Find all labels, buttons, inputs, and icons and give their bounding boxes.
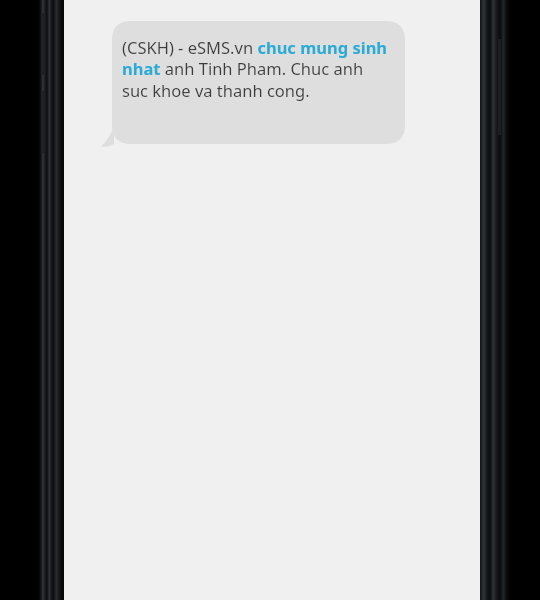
button[interactable]: (CSKH) - eSMS.vn chuc mung sinh nhat anh… — [101, 21, 405, 147]
staticText: (CSKH) - eSMS.vn chuc mung sinh nhat anh… — [122, 36, 388, 102]
